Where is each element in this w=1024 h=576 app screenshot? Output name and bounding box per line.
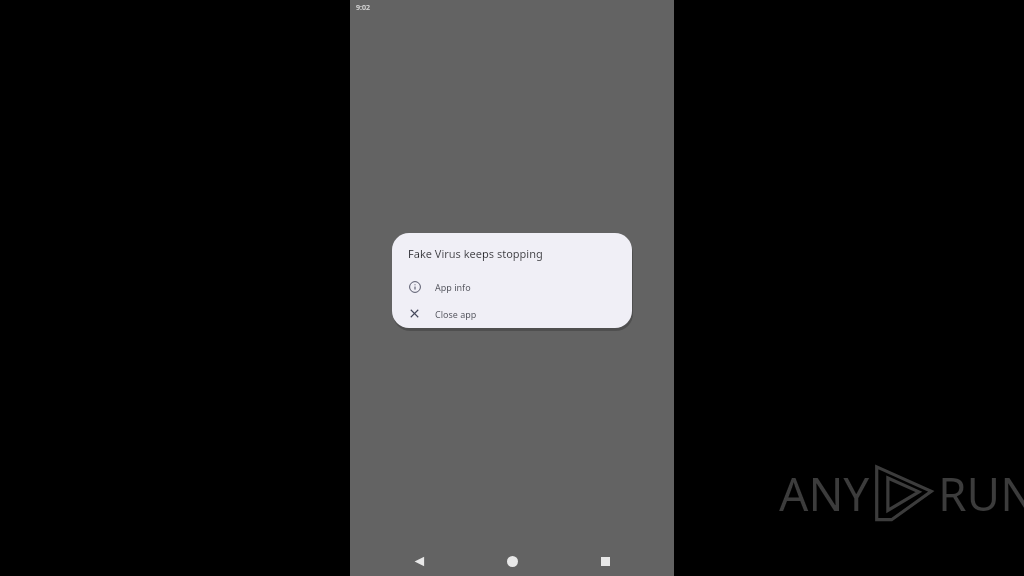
staticText: Close app bbox=[435, 308, 477, 320]
staticText: App info bbox=[435, 281, 471, 293]
button[interactable]: Close app bbox=[392, 300, 632, 327]
button[interactable]: App info bbox=[392, 273, 632, 300]
button[interactable]: Recent apps bbox=[590, 546, 620, 576]
staticText: RUN bbox=[938, 462, 1024, 524]
staticText: 9:02 bbox=[356, 3, 370, 13]
button[interactable]: Home bbox=[497, 546, 527, 576]
staticText: Fake Virus keeps stopping bbox=[408, 246, 543, 261]
staticText: ANY bbox=[779, 462, 870, 524]
button[interactable]: Back bbox=[404, 546, 434, 576]
